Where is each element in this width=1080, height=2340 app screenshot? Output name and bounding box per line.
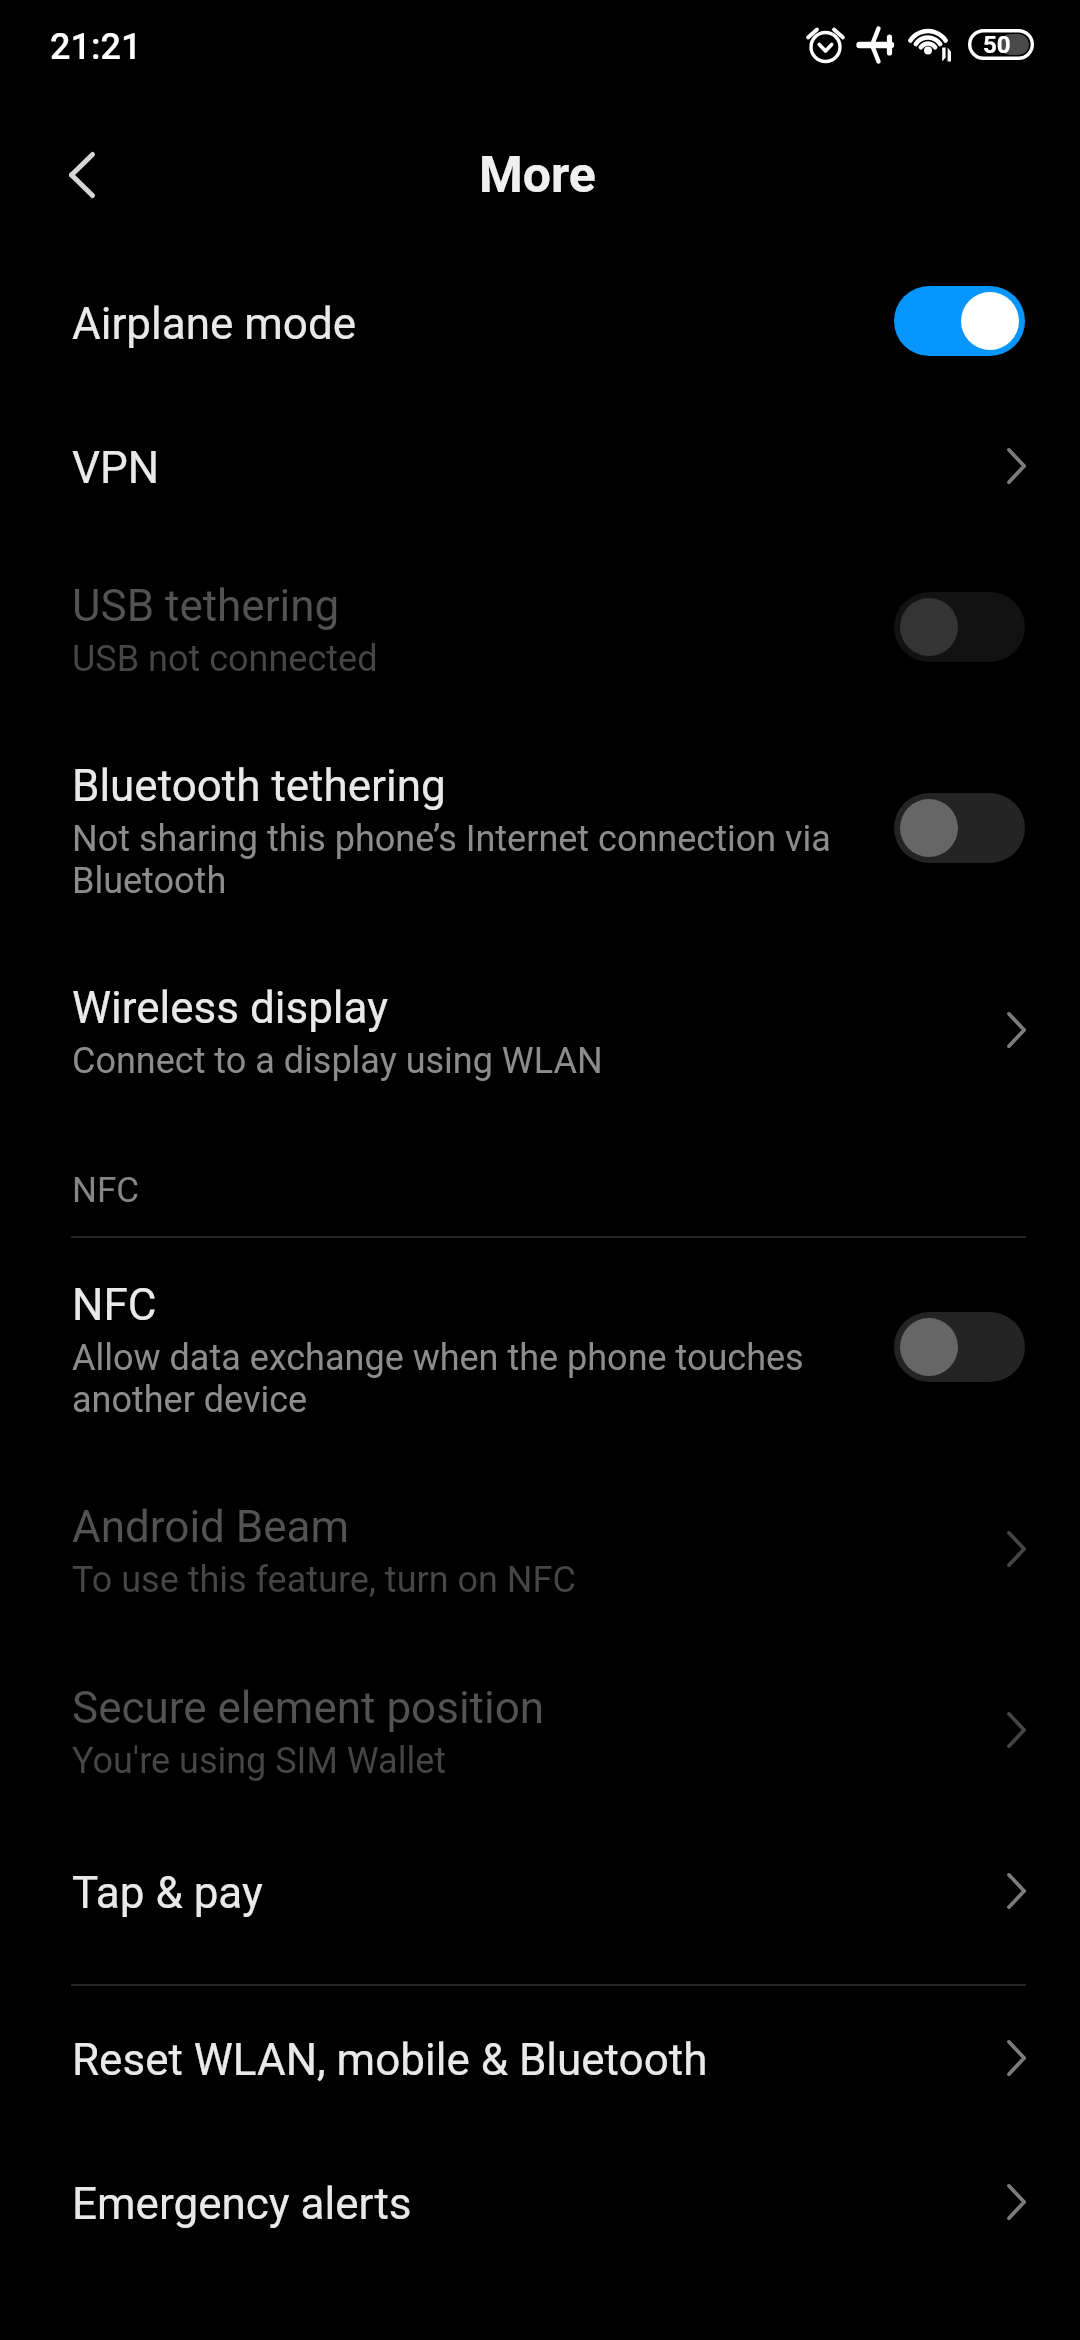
button[interactable]: NFC switch (894, 1312, 1025, 1382)
staticText: Reset WLAN, mobile & Bluetooth (72, 2034, 708, 2086)
staticText: Allow data exchange when the phone touch… (72, 1337, 882, 1421)
staticText: You're using SIM Wallet (72, 1740, 447, 1782)
other: Open Secure element position (1007, 1712, 1026, 1748)
staticText: More (479, 146, 596, 205)
other: Open Wireless display (1007, 1012, 1026, 1048)
button[interactable]: Emergency alerts (0, 2154, 1080, 2254)
button[interactable]: Android Beam (0, 1477, 1080, 1625)
staticText: 50 (983, 31, 1011, 59)
button[interactable]: Secure element position (0, 1658, 1080, 1806)
button[interactable]: Tap & pay (0, 1843, 1080, 1943)
staticText: VPN (72, 442, 160, 494)
staticText: Secure element position (72, 1682, 545, 1734)
staticText: NFC (72, 1279, 157, 1331)
staticText: Wireless display (72, 982, 388, 1034)
staticText: Android Beam (72, 1501, 350, 1553)
button[interactable]: Airplane mode switch (894, 286, 1025, 356)
button[interactable]: USB tethering (0, 556, 1080, 704)
button[interactable]: VPN (0, 418, 1080, 518)
button[interactable]: Airplane mode (0, 274, 1080, 374)
button[interactable]: Bluetooth tethering (0, 736, 1080, 926)
button[interactable]: Bluetooth tethering switch (894, 793, 1025, 863)
staticText: NFC (72, 1170, 140, 1211)
staticText: USB tethering (72, 580, 340, 632)
other: Open Emergency alerts (1007, 2184, 1026, 2220)
button[interactable]: Reset WLAN, mobile & Bluetooth (0, 2010, 1080, 2110)
other: Open VPN (1007, 448, 1026, 484)
staticText: To use this feature, turn on NFC (72, 1559, 576, 1601)
staticText: Connect to a display using WLAN (72, 1040, 603, 1082)
button[interactable]: Wireless display (0, 958, 1080, 1106)
staticText: Bluetooth tethering (72, 760, 446, 812)
other: Open Android Beam (1007, 1531, 1026, 1567)
staticText: Airplane mode (72, 298, 357, 350)
button[interactable]: Back (54, 147, 110, 203)
staticText: Not sharing this phone’s Internet connec… (72, 818, 882, 902)
button[interactable]: NFC (0, 1255, 1080, 1445)
staticText: Emergency alerts (72, 2178, 412, 2230)
other: Open Reset WLAN, mobile & Bluetooth (1007, 2040, 1026, 2076)
staticText: USB not connected (72, 638, 378, 680)
staticText: 21:21 (50, 26, 142, 68)
button[interactable]: USB tethering switch (894, 592, 1025, 662)
other: Open Tap & pay (1007, 1873, 1026, 1909)
staticText: Tap & pay (72, 1867, 263, 1919)
